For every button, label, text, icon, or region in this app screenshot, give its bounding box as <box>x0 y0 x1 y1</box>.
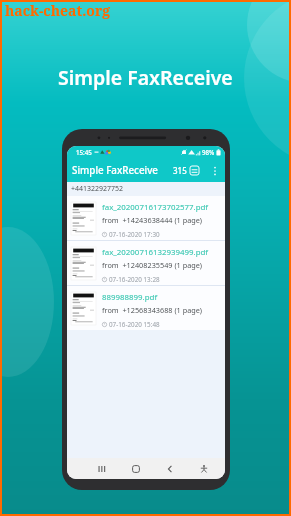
button[interactable]: fax_20200716173702577.pdf <box>67 196 225 240</box>
staticText: from +12568343688 (1 page) <box>102 305 203 315</box>
staticText: 07-16-2020 13:28 <box>109 275 160 283</box>
staticText: fax_20200716132939499.pdf <box>102 247 209 258</box>
button[interactable]: More options <box>208 164 221 177</box>
staticText: 315 <box>173 165 187 176</box>
staticText: from +12408235549 (1 page) <box>102 260 203 270</box>
button[interactable]: fax_20200716132939499.pdf <box>67 241 225 285</box>
button[interactable]: 889988899.pdf <box>67 286 225 330</box>
button[interactable]: 315 <box>173 165 200 176</box>
staticText: Simple FaxReceive <box>72 164 158 177</box>
staticText: hack-cheat.org <box>5 1 111 20</box>
staticText: Simple FaxReceive <box>58 64 233 91</box>
staticText: +441322927752 <box>71 184 124 194</box>
staticText: fax_20200716173702577.pdf <box>102 202 209 213</box>
staticText: 15:45 <box>76 148 92 156</box>
staticText: 98% <box>202 148 215 156</box>
button[interactable]: Back <box>153 458 187 479</box>
staticText: 889988899.pdf <box>102 292 158 303</box>
button[interactable]: Accessibility <box>187 458 221 479</box>
staticText: from +14243638444 (1 page) <box>102 215 203 225</box>
staticText: 07-16-2020 15:48 <box>109 320 160 328</box>
button[interactable]: Home <box>119 458 153 479</box>
button[interactable]: Recents <box>84 458 119 479</box>
staticText: 07-16-2020 17:30 <box>109 230 160 238</box>
